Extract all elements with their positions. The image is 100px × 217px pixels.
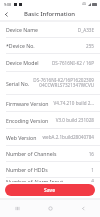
staticText: Number of HDDs	[6, 166, 48, 173]
staticText: DS-7616NI-K2 / 16P	[42, 60, 94, 66]
button[interactable]: Encoding Version	[0, 112, 100, 128]
staticText: V3.0 build 231028	[52, 117, 94, 123]
staticText: D_A33E	[41, 27, 94, 33]
staticText: Serial No.	[6, 80, 30, 87]
button[interactable]: Number of Channels	[0, 146, 100, 161]
staticText: 4	[67, 178, 94, 182]
staticText: Number of Channels	[6, 150, 57, 157]
staticText: Device Model	[6, 59, 39, 66]
staticText: DS-7616NI-K2/16P1620230904CCWRLS7321347W…	[33, 77, 94, 89]
button[interactable]: Number of Alarm Input	[0, 178, 100, 182]
staticText: 16	[60, 151, 94, 157]
button[interactable]: Device Name	[0, 22, 100, 37]
staticText: V4.74.210 build 240109	[52, 100, 94, 106]
button[interactable]: Firmware Version	[0, 95, 100, 111]
button[interactable]: Device Model	[0, 54, 100, 71]
button[interactable]: Home	[34, 200, 67, 217]
staticText: 255	[38, 43, 94, 49]
button[interactable]: Save	[5, 184, 95, 196]
button[interactable]: Recent apps	[0, 200, 34, 217]
staticText: webA.2.1build28040784	[40, 134, 94, 140]
staticText: 4G	[82, 2, 87, 6]
button[interactable]: Number of HDDs	[0, 162, 100, 177]
staticText: Firmware Version	[6, 100, 49, 107]
staticText: Save	[44, 187, 56, 194]
button[interactable]: Back	[0, 8, 12, 20]
staticText: Number of Alarm Input	[6, 178, 64, 182]
staticText: Web Version	[6, 134, 37, 141]
button[interactable]: Back	[67, 200, 100, 217]
staticText: Encoding Version	[6, 117, 49, 124]
button[interactable]: *Device No.	[0, 38, 100, 53]
staticText: *Device No.	[6, 42, 35, 49]
staticText: Basic Information	[24, 10, 76, 18]
staticText: 1	[51, 167, 94, 173]
staticText: 9:08	[4, 2, 12, 7]
button[interactable]: Serial No.	[0, 72, 100, 94]
staticText: Device Name	[6, 26, 38, 33]
button[interactable]: Web Version	[0, 129, 100, 145]
